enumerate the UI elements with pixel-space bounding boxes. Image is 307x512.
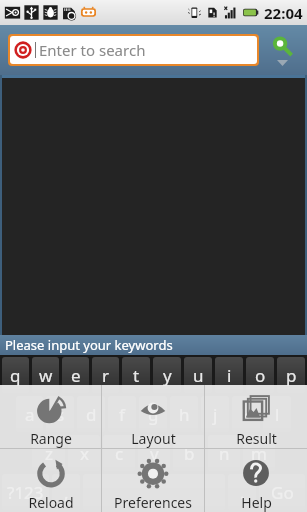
button[interactable]: Result [205,385,307,448]
staticText: Go [271,481,294,504]
staticText: w [39,364,53,387]
button[interactable]: m [243,435,275,471]
staticText: Preferences [114,493,192,512]
staticText: f [119,403,125,426]
button[interactable]: d [77,396,105,432]
button[interactable]: o [246,357,274,393]
button[interactable]: r [92,357,119,393]
button[interactable]: Preferences [102,449,204,512]
staticText: 22:04 [264,3,303,23]
button[interactable]: x [68,435,100,471]
button[interactable]: n [208,435,240,471]
staticText: m [251,442,267,465]
staticText: Range [30,429,72,448]
button[interactable]: k [232,396,260,432]
staticText: y [163,364,172,387]
staticText: Result [236,429,277,448]
staticText: e [71,364,81,387]
staticText: a [25,403,35,426]
staticText: Enter to search [39,40,146,60]
button[interactable]: y [153,357,181,393]
button[interactable]: p [277,357,305,393]
button[interactable]: j [201,396,229,432]
staticText: Please input your keywords [5,336,173,354]
staticText: ?123 [7,481,44,504]
staticText: c [115,442,124,465]
button[interactable]: i [215,357,243,393]
staticText: v [150,442,159,465]
staticText: k [241,403,251,426]
button[interactable]: c [103,435,135,471]
staticText: h [179,403,190,426]
staticText: b [184,442,195,465]
staticText: x [80,442,89,465]
button[interactable]: l [263,396,291,432]
button[interactable]: z [32,435,65,471]
staticText: i [227,364,232,387]
button[interactable]: s [46,396,74,432]
staticText: . [240,481,245,504]
button[interactable]: w [32,357,59,393]
button[interactable]: u [184,357,212,393]
staticText: j [213,403,218,426]
staticText: t [133,364,140,387]
staticText: u [193,364,204,387]
button[interactable]: g [139,396,167,432]
staticText: Reload [28,493,74,512]
button[interactable]: a [16,396,43,432]
button[interactable]: Layout [102,385,204,448]
button[interactable]: q [2,357,29,393]
staticText: p [286,364,297,387]
button[interactable]: Help [205,449,307,512]
staticText: Layout [131,429,176,448]
staticText: r [102,364,110,387]
staticText: n [219,442,230,465]
button[interactable]: Range [0,385,101,448]
staticText: q [10,364,21,387]
staticText: o [255,364,266,387]
button[interactable]: Search [265,25,299,75]
button[interactable]: b [173,435,205,471]
button[interactable]: Go [259,474,305,510]
button[interactable]: e [62,357,89,393]
staticText: l [275,403,280,426]
staticText: d [86,403,97,426]
button[interactable]: . [228,474,256,510]
button[interactable]: t [122,357,150,393]
staticText: , [64,481,69,504]
staticText: z [45,442,53,465]
button[interactable]: Enter to search [10,36,257,64]
button[interactable]: Reload [0,449,101,512]
staticText: g [148,403,159,426]
staticText: s [56,403,65,426]
button[interactable]: , [52,474,80,510]
staticText: Help [241,493,272,512]
button[interactable]: v [138,435,170,471]
button[interactable]: ?123 [2,474,49,510]
button[interactable] [83,474,225,510]
